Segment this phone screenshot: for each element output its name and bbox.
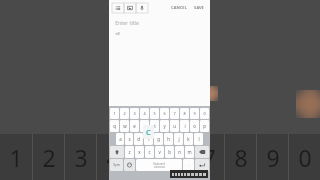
button[interactable]: SAVE <box>193 3 205 13</box>
button[interactable]: Insert image <box>124 3 136 13</box>
button[interactable]: Enter <box>195 159 209 171</box>
staticText: h <box>167 136 170 142</box>
button[interactable]: 6 <box>160 108 169 119</box>
button[interactable]: 5 <box>129 134 160 180</box>
button[interactable]: q <box>110 120 119 132</box>
staticText: g <box>157 136 160 142</box>
button[interactable]: 6 <box>161 134 192 180</box>
button[interactable]: h <box>164 133 173 145</box>
button[interactable]: 4 <box>97 134 128 180</box>
staticText: C <box>146 127 151 137</box>
button[interactable]: 7 <box>170 108 179 119</box>
button[interactable]: 5 <box>150 108 159 119</box>
button[interactable]: 8 <box>225 134 256 180</box>
staticText: p <box>203 123 206 129</box>
staticText: 2 <box>123 111 126 116</box>
staticText: w <box>123 123 127 129</box>
staticText: SAVE <box>194 5 204 11</box>
button[interactable]: 1 <box>110 108 119 119</box>
button[interactable]: Emoji <box>124 159 135 171</box>
staticText: 4 <box>106 142 120 173</box>
staticText: Enter title <box>115 19 139 26</box>
button[interactable]: g <box>154 133 163 145</box>
button[interactable]: 2 <box>33 134 64 180</box>
button[interactable]: r <box>140 120 149 132</box>
button[interactable]: p <box>200 120 209 132</box>
button[interactable]: 8 <box>180 108 189 119</box>
staticText: v <box>158 149 161 155</box>
staticText: 7 <box>202 142 216 173</box>
staticText: q <box>113 123 116 129</box>
staticText: u <box>173 123 176 129</box>
button[interactable]: t <box>150 120 159 132</box>
button[interactable]: Voice recording <box>136 3 148 13</box>
button[interactable]: c <box>145 146 154 158</box>
button[interactable]: 0 <box>289 134 320 180</box>
staticText: d <box>137 136 140 142</box>
staticText: a <box>119 136 122 142</box>
staticText: 9 <box>266 142 280 173</box>
button[interactable]: 9 <box>257 134 288 180</box>
button[interactable]: u <box>170 120 179 132</box>
button[interactable]: y <box>160 120 169 132</box>
staticText: 6 <box>163 111 166 116</box>
staticText: l <box>198 136 200 142</box>
staticText: 8 <box>234 142 248 173</box>
button[interactable]: o <box>190 120 199 132</box>
button[interactable]: Space <box>136 159 182 171</box>
button[interactable]: d <box>134 133 143 145</box>
button[interactable]: 1 <box>0 134 32 180</box>
staticText: 3 <box>74 142 88 173</box>
button[interactable]: 3 <box>130 108 139 119</box>
staticText: t <box>154 123 156 129</box>
button[interactable]: Shift <box>110 146 124 158</box>
button[interactable]: . <box>183 159 194 171</box>
button[interactable]: n <box>175 146 184 158</box>
button[interactable]: x <box>135 146 144 158</box>
button[interactable]: a <box>116 133 124 145</box>
button[interactable]: Backspace <box>195 146 209 158</box>
staticText: CANCEL <box>171 5 187 11</box>
button[interactable]: 9 <box>190 108 199 119</box>
staticText: i <box>184 123 186 129</box>
button[interactable]: Checklist <box>112 3 124 13</box>
button[interactable]: m <box>185 146 194 158</box>
staticText: y <box>163 123 166 129</box>
staticText: 1 <box>113 111 116 116</box>
staticText: n <box>178 149 181 155</box>
button[interactable]: s <box>125 133 133 145</box>
button[interactable]: CANCEL <box>170 3 188 13</box>
button[interactable]: z <box>125 146 134 158</box>
button[interactable]: 0 <box>200 108 209 119</box>
button[interactable]: 2 <box>120 108 129 119</box>
staticText: 3 <box>133 111 136 116</box>
staticText: cll <box>115 31 120 37</box>
staticText: s <box>128 136 131 142</box>
button[interactable]: 7 <box>193 134 224 180</box>
button[interactable]: 3 <box>65 134 96 180</box>
staticText: 0 <box>298 142 312 173</box>
button[interactable]: f <box>144 133 153 145</box>
button[interactable]: w <box>120 120 129 132</box>
button[interactable]: e <box>130 120 139 132</box>
staticText: Sym <box>113 163 120 167</box>
staticText: 1 <box>9 142 23 173</box>
button[interactable]: k <box>184 133 193 145</box>
button[interactable]: i <box>180 120 189 132</box>
staticText: o <box>193 123 196 129</box>
staticText: x <box>138 149 141 155</box>
button[interactable]: b <box>165 146 174 158</box>
button[interactable]: Sym <box>110 159 123 171</box>
staticText: 5 <box>153 111 156 116</box>
button[interactable]: j <box>174 133 183 145</box>
button[interactable]: l <box>194 133 203 145</box>
staticText: j <box>178 136 180 142</box>
button[interactable]: 4 <box>140 108 149 119</box>
staticText: m <box>187 149 192 155</box>
staticText: z <box>128 149 131 155</box>
staticText: k <box>187 136 190 142</box>
staticText: f <box>148 136 150 142</box>
staticText: 4 <box>143 111 146 116</box>
button[interactable]: v <box>155 146 164 158</box>
staticText: 6 <box>170 142 184 173</box>
